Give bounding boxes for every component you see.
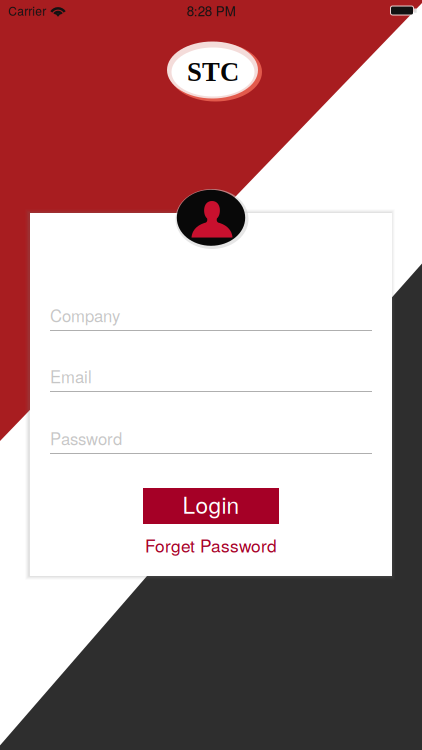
staticText: 8:28 PM xyxy=(186,1,235,20)
staticText: Login xyxy=(182,488,239,520)
button[interactable]: Login xyxy=(143,488,279,524)
staticText: Email xyxy=(50,364,92,388)
staticText: Password xyxy=(50,426,122,450)
staticText: Company xyxy=(50,303,120,327)
staticText: Forget Password xyxy=(145,533,277,557)
button[interactable]: Forget Password xyxy=(50,536,372,554)
staticText: STC xyxy=(187,57,239,87)
staticText: Carrier xyxy=(8,2,46,19)
